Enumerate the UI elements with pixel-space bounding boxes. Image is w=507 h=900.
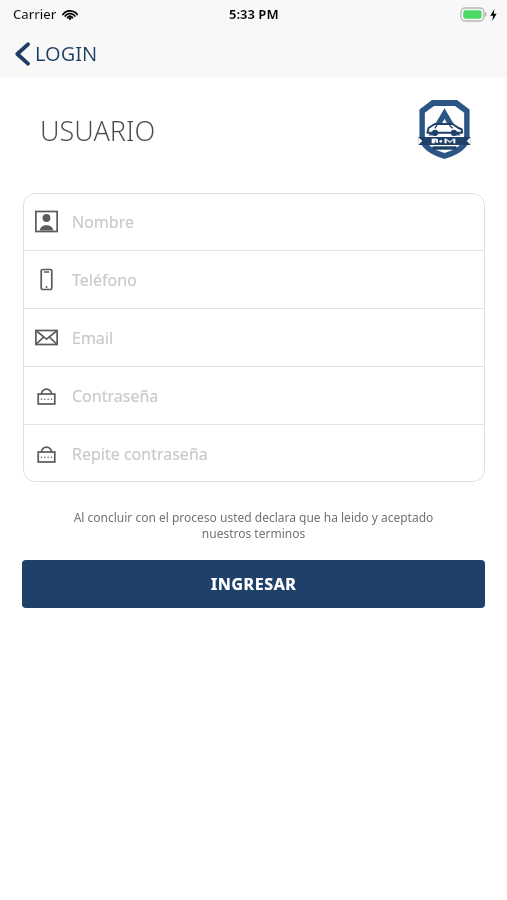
button[interactable]: Nombre	[23, 193, 485, 250]
button[interactable]: Repite contraseña	[23, 425, 485, 482]
button[interactable]: INGRESAR	[22, 560, 485, 608]
staticText: INGRESAR	[211, 573, 297, 595]
staticText: Al concluir con el proceso usted declara…	[55, 509, 452, 541]
staticText: USUARIO	[40, 112, 156, 149]
button[interactable]: Teléfono	[23, 251, 485, 308]
staticText: Repite contraseña	[72, 443, 208, 465]
staticText: 5:33 PM	[229, 5, 279, 23]
staticText: LOGIN	[35, 40, 98, 67]
button[interactable]: Contraseña	[23, 367, 485, 424]
other: B&M Taxi logo	[416, 97, 473, 159]
staticText: Nombre	[72, 211, 134, 233]
staticText: Carrier	[13, 5, 57, 23]
staticText: Teléfono	[72, 269, 137, 291]
button[interactable]: Email	[23, 309, 485, 366]
button[interactable]: LOGIN	[10, 34, 104, 73]
staticText: Email	[72, 327, 114, 349]
staticText: Contraseña	[72, 385, 159, 407]
